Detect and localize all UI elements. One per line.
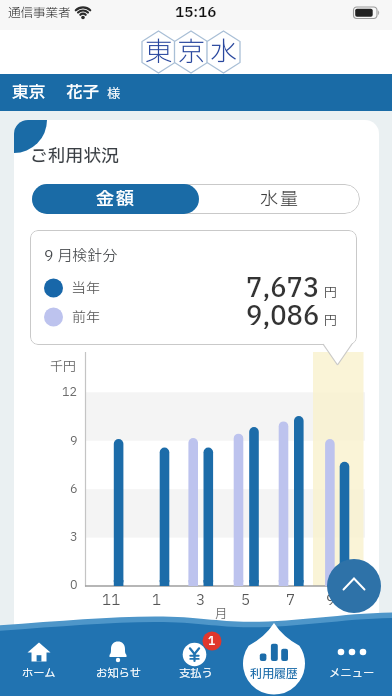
staticText: 通信事業者: [8, 4, 71, 23]
staticText: 1: [152, 590, 162, 612]
button[interactable]: [78, 628, 156, 696]
staticText: 月: [215, 605, 228, 624]
staticText: 金額: [96, 186, 136, 213]
staticText: 7,673: [246, 269, 320, 308]
button[interactable]: [199, 184, 360, 214]
staticText: 水量: [260, 186, 300, 213]
staticText: 利用履歴: [250, 665, 299, 683]
staticText: 円: [324, 311, 338, 330]
staticText: 6: [70, 480, 78, 498]
staticText: 11: [102, 590, 121, 612]
staticText: 1: [208, 633, 216, 650]
staticText: お知らせ: [96, 665, 141, 682]
staticText: 15:16: [175, 2, 217, 24]
staticText: メニュー: [329, 665, 375, 682]
staticText: 千円: [50, 357, 77, 376]
staticText: 9 月検針分: [44, 245, 118, 267]
staticText: 支払う: [179, 665, 213, 682]
button[interactable]: [0, 628, 78, 696]
staticText: ホーム: [22, 665, 56, 682]
staticText: 花子: [66, 81, 99, 106]
button[interactable]: [234, 628, 312, 696]
button[interactable]: [32, 184, 199, 214]
staticText: 9: [70, 432, 78, 450]
button[interactable]: [327, 559, 381, 613]
staticText: ご利用状況: [30, 143, 119, 169]
staticText: 円: [324, 283, 338, 302]
staticText: 東京: [12, 81, 45, 106]
staticText: 前年: [72, 307, 100, 328]
button[interactable]: [312, 628, 390, 696]
staticText: 当年: [72, 278, 100, 299]
button[interactable]: [156, 628, 234, 696]
staticText: 水: [210, 32, 237, 72]
staticText: 3: [70, 528, 78, 546]
staticText: 9,086: [246, 297, 320, 336]
staticText: 12: [62, 383, 78, 401]
staticText: 京: [178, 32, 205, 72]
staticText: 3: [196, 590, 206, 612]
staticText: 様: [107, 84, 121, 103]
staticText: 7: [286, 590, 296, 612]
staticText: 0: [70, 576, 78, 594]
staticText: 5: [241, 590, 251, 612]
staticText: 9: [326, 590, 336, 612]
staticText: 東: [145, 32, 172, 72]
